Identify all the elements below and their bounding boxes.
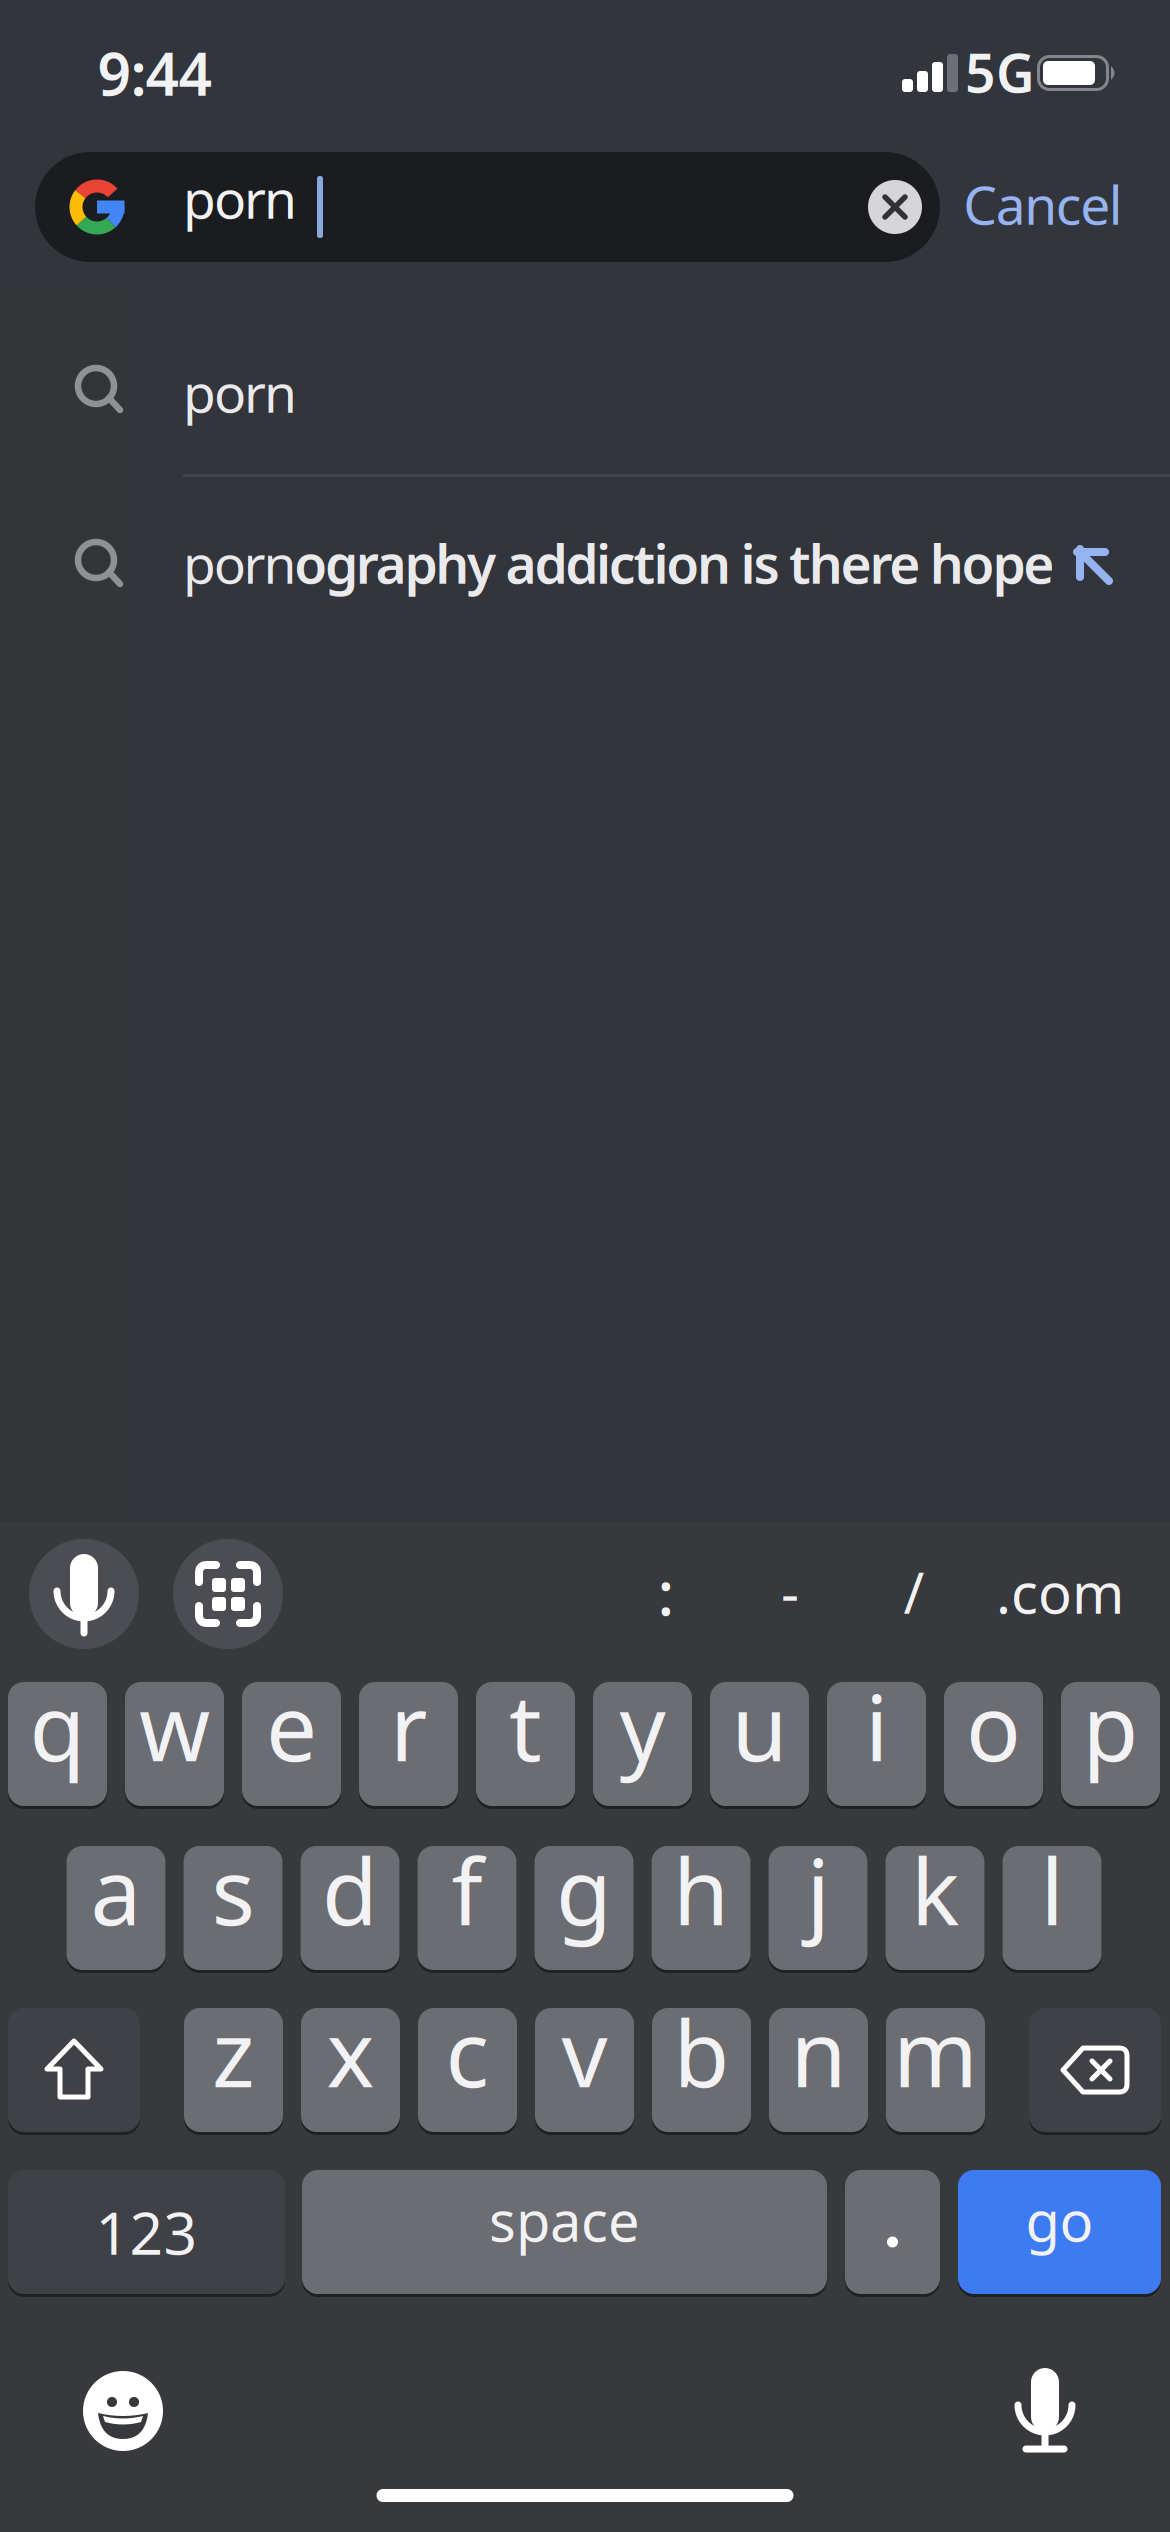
staticText: m xyxy=(893,1992,978,2112)
staticText: - xyxy=(781,1555,799,1629)
button[interactable]: z xyxy=(184,2008,283,2132)
button[interactable]: g xyxy=(534,1846,633,1970)
button[interactable]: Cancel xyxy=(953,149,1133,259)
staticText: y xyxy=(619,1666,665,1786)
button[interactable]: Google Lens xyxy=(173,1539,283,1649)
staticText: b xyxy=(673,1992,729,2112)
button[interactable]: t xyxy=(476,1682,575,1806)
button[interactable]: 123 xyxy=(8,2170,285,2294)
staticText: q xyxy=(29,1666,85,1786)
staticText: f xyxy=(451,1830,482,1950)
button[interactable]: e xyxy=(242,1682,341,1806)
button[interactable]: x xyxy=(301,2008,400,2132)
staticText: d xyxy=(322,1830,378,1950)
button[interactable]: b xyxy=(652,2008,751,2132)
button[interactable]: Delete xyxy=(1029,2006,1161,2133)
staticText: s xyxy=(211,1830,254,1950)
staticText: c xyxy=(445,1992,489,2112)
button[interactable]: o xyxy=(944,1682,1043,1806)
staticText: r xyxy=(390,1666,427,1786)
button[interactable]: j xyxy=(768,1846,867,1970)
staticText: : xyxy=(657,1551,674,1633)
staticText: g xyxy=(556,1830,612,1950)
button[interactable]: s xyxy=(183,1846,282,1970)
staticText: porn xyxy=(183,163,297,233)
staticText: j xyxy=(806,1830,829,1950)
button[interactable]: : xyxy=(616,1537,716,1647)
staticText: v xyxy=(561,1992,607,2112)
staticText: pornography addiction is there hope xyxy=(183,528,1054,598)
staticText: w xyxy=(139,1666,210,1786)
button[interactable]: r xyxy=(359,1682,458,1806)
button[interactable]: go xyxy=(958,2170,1161,2294)
staticText: Cancel xyxy=(963,169,1123,239)
button[interactable]: Voice search xyxy=(29,1539,139,1649)
staticText: k xyxy=(911,1830,959,1950)
button[interactable]: space xyxy=(302,2170,827,2294)
staticText: / xyxy=(903,1555,924,1629)
staticText: h xyxy=(673,1830,729,1950)
button[interactable]: f xyxy=(417,1846,516,1970)
button[interactable]: h xyxy=(651,1846,750,1970)
button[interactable]: / xyxy=(864,1537,964,1647)
staticText: x xyxy=(326,1992,374,2112)
staticText: e xyxy=(266,1666,317,1786)
button[interactable]: - xyxy=(740,1537,840,1647)
button[interactable]: w xyxy=(125,1682,224,1806)
staticText: 123 xyxy=(95,2193,197,2271)
button[interactable]: q xyxy=(8,1682,107,1806)
button[interactable]: Dictation xyxy=(990,2353,1100,2463)
staticText: go xyxy=(1025,2183,1093,2257)
button[interactable]: l xyxy=(1002,1846,1101,1970)
button[interactable]: a xyxy=(66,1846,165,1970)
button[interactable]: i xyxy=(827,1682,926,1806)
staticText: 9:44 xyxy=(97,34,212,112)
button[interactable]: Emoji xyxy=(83,2371,163,2451)
staticText: 5G xyxy=(965,37,1035,107)
staticText: t xyxy=(509,1666,542,1786)
button[interactable]: .com xyxy=(980,1537,1140,1647)
button[interactable]: p xyxy=(1061,1682,1160,1806)
staticText: i xyxy=(865,1666,888,1786)
button[interactable]: Period xyxy=(845,2170,940,2294)
staticText: .com xyxy=(996,1555,1124,1629)
button[interactable]: n xyxy=(769,2008,868,2132)
staticText: space xyxy=(489,2183,640,2257)
staticText: u xyxy=(731,1666,787,1786)
staticText: p xyxy=(1082,1666,1138,1786)
button[interactable]: v xyxy=(535,2008,634,2132)
button[interactable]: Shift xyxy=(8,2006,140,2133)
button[interactable]: Search xyxy=(35,152,940,262)
button[interactable]: pornography addiction is there hope xyxy=(0,496,1170,636)
button[interactable]: u xyxy=(710,1682,809,1806)
staticText: n xyxy=(790,1992,846,2112)
staticText: z xyxy=(212,1992,255,2112)
button[interactable]: c xyxy=(418,2008,517,2132)
button[interactable]: porn xyxy=(0,330,1170,454)
staticText: porn xyxy=(183,357,297,427)
button[interactable]: y xyxy=(593,1682,692,1806)
staticText: o xyxy=(966,1666,1021,1786)
button[interactable]: m xyxy=(886,2008,985,2132)
staticText: a xyxy=(90,1830,141,1950)
staticText: l xyxy=(1040,1830,1063,1950)
button[interactable]: Clear text xyxy=(868,180,922,234)
button[interactable]: d xyxy=(300,1846,399,1970)
button[interactable]: k xyxy=(885,1846,984,1970)
